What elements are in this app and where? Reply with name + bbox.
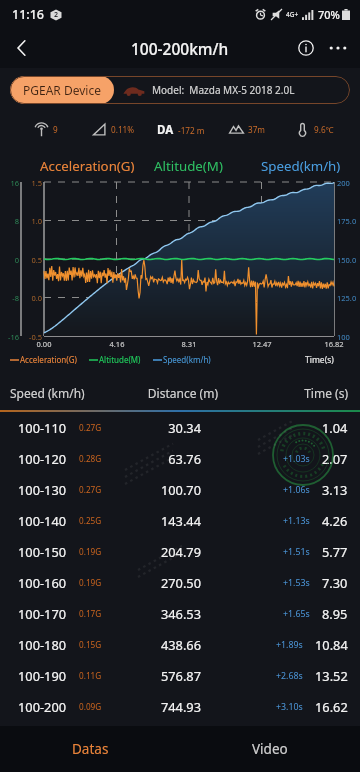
staticText: 0.28G: [79, 453, 102, 464]
staticText: 2.07: [322, 450, 348, 467]
staticText: 204.79: [140, 543, 201, 560]
staticText: 346.53: [140, 605, 201, 622]
staticText: 16.82: [322, 339, 346, 349]
staticText: 8.31: [177, 339, 201, 349]
staticText: DA: [157, 122, 174, 138]
staticText: Speed(km/h): [261, 157, 341, 175]
staticText: +1.06s: [283, 484, 310, 496]
staticText: 270.50: [140, 574, 201, 591]
staticText: Altitude(M): [99, 354, 141, 365]
staticText: 4.16: [105, 339, 129, 349]
button[interactable]: 100-120: [0, 443, 360, 474]
staticText: +2.68s: [276, 670, 303, 682]
staticText: 0.27G: [79, 422, 102, 433]
staticText: 150.0: [337, 255, 357, 265]
staticText: -0.5: [22, 332, 42, 342]
staticText: Speed (km/h): [10, 385, 140, 401]
staticText: 13.52: [315, 667, 348, 684]
staticText: 70%: [318, 7, 340, 22]
button[interactable]: 100-200: [0, 691, 360, 722]
staticText: 0.00: [32, 339, 56, 349]
staticText: 0.09G: [79, 701, 102, 712]
staticText: 100-170: [18, 605, 67, 622]
staticText: Altitude(M): [154, 157, 223, 175]
staticText: 143.44: [140, 512, 201, 529]
staticText: 0.0: [22, 293, 42, 303]
staticText: 10.84: [315, 636, 348, 653]
staticText: 16: [0, 178, 19, 188]
staticText: Time (s): [218, 385, 348, 401]
button[interactable]: 100-140: [0, 505, 360, 536]
staticText: Datas: [72, 740, 109, 758]
staticText: 0.25G: [79, 515, 102, 526]
staticText: 0.19G: [79, 546, 102, 557]
staticText: 0: [0, 255, 19, 265]
staticText: +1.89s: [276, 639, 303, 651]
staticText: -16: [0, 332, 19, 342]
staticText: +1.65s: [283, 608, 310, 620]
staticText: 12.47: [250, 339, 274, 349]
staticText: 438.66: [140, 636, 201, 653]
staticText: 100-150: [18, 543, 67, 560]
staticText: 63.76: [140, 450, 201, 467]
staticText: -8: [0, 293, 19, 303]
staticText: 0.5: [22, 255, 42, 265]
staticText: 1.04: [322, 419, 348, 436]
staticText: 37m: [248, 124, 266, 135]
staticText: Acceleration(G): [20, 354, 77, 365]
staticText: 100-110: [18, 419, 67, 436]
staticText: 9.6℃: [314, 124, 334, 135]
staticText: 11:16: [12, 6, 45, 23]
staticText: 0.17G: [79, 608, 102, 619]
button[interactable]: Back: [4, 30, 40, 66]
staticText: Distance (m): [140, 385, 218, 401]
staticText: 100-140: [18, 512, 67, 529]
staticText: Speed(km/h): [163, 354, 211, 365]
staticText: 200: [337, 178, 350, 188]
staticText: +3.10s: [276, 701, 303, 713]
staticText: +1.13s: [283, 515, 310, 527]
staticText: Acceleration(G): [40, 157, 135, 175]
staticText: 0.11%: [111, 124, 135, 135]
staticText: 576.87: [140, 667, 201, 684]
staticText: 175.0: [337, 216, 357, 226]
staticText: 8.95: [322, 605, 348, 622]
button[interactable]: Info: [290, 32, 322, 64]
button[interactable]: 100-150: [0, 536, 360, 567]
staticText: 2: [54, 10, 59, 20]
staticText: Model: Mazda MX-5 2018 2.0L: [152, 83, 295, 97]
button[interactable]: Datas: [0, 726, 180, 772]
staticText: 100-160: [18, 574, 67, 591]
button[interactable]: More options: [322, 32, 354, 64]
staticText: 4G+: [286, 10, 299, 19]
button[interactable]: Video: [180, 726, 360, 772]
staticText: 1.0: [22, 216, 42, 226]
staticText: 0.11G: [79, 670, 102, 681]
staticText: 16.62: [315, 698, 348, 715]
staticText: 744.93: [140, 698, 201, 715]
button[interactable]: 100-130: [0, 474, 360, 505]
staticText: +1.03s: [283, 453, 310, 465]
staticText: 100-200: [18, 698, 67, 715]
staticText: 0.19G: [79, 577, 102, 588]
staticText: 100-180: [18, 636, 67, 653]
staticText: 100-120: [18, 450, 67, 467]
staticText: -172 m: [178, 125, 205, 136]
button[interactable]: 100-190: [0, 660, 360, 691]
staticText: 30.34: [140, 419, 201, 436]
staticText: 5.77: [322, 543, 348, 560]
button[interactable]: 100-180: [0, 629, 360, 660]
staticText: 100-130: [18, 481, 67, 498]
staticText: 1.5: [22, 178, 42, 188]
staticText: +1.53s: [283, 577, 310, 589]
staticText: PGEAR Device: [23, 82, 101, 98]
staticText: 100: [337, 332, 350, 342]
staticText: 8: [0, 216, 19, 226]
staticText: 0.27G: [79, 484, 102, 495]
button[interactable]: 100-170: [0, 598, 360, 629]
button[interactable]: PGEAR Device: [10, 76, 350, 104]
staticText: Video: [252, 740, 288, 758]
button[interactable]: 100-110: [0, 412, 360, 443]
staticText: 100-200km/h: [131, 38, 229, 59]
button[interactable]: 100-160: [0, 567, 360, 598]
